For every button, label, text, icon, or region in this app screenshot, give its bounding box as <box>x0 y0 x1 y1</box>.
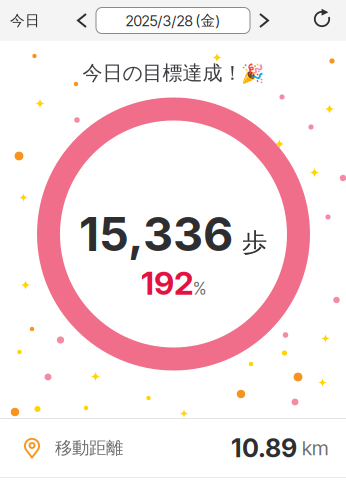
staticText: 🎉 <box>240 63 263 85</box>
staticText: 歩 <box>242 227 267 258</box>
button[interactable]: Next day <box>250 0 278 41</box>
button[interactable]: 今日 <box>0 0 50 41</box>
button[interactable]: Refresh <box>303 0 345 41</box>
staticText: km <box>302 436 328 460</box>
staticText: 15,336 <box>79 206 233 262</box>
staticText: 今日の目標達成！ <box>82 60 242 86</box>
staticText: 2025/3/28 (金) <box>125 11 220 30</box>
button[interactable]: Previous day <box>68 0 96 41</box>
staticText: 192 <box>141 264 194 302</box>
staticText: 移動距離 <box>55 437 123 459</box>
staticText: 10.89 <box>231 433 297 463</box>
staticText: % <box>193 278 206 299</box>
button[interactable]: 移動距離 <box>0 419 346 477</box>
button[interactable]: 2025/3/28 (金) <box>96 0 250 41</box>
staticText: 今日 <box>10 11 40 30</box>
